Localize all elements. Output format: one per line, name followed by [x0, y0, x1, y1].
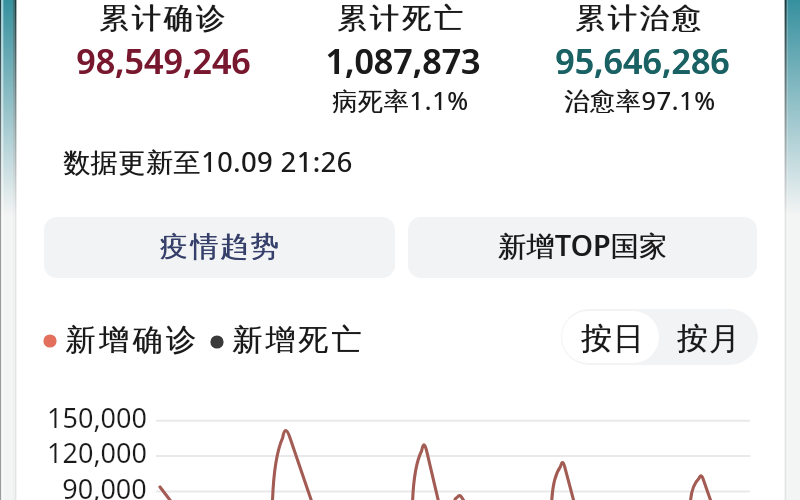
- staticText: 98,549,246: [76, 38, 251, 84]
- staticText: 累计治愈: [574, 0, 704, 37]
- button[interactable]: 新增死亡: [206, 321, 362, 357]
- staticText: 疫情趋势: [160, 229, 281, 264]
- staticText: 98,549,246: [76, 38, 251, 84]
- button[interactable]: 疫情趋势: [44, 217, 395, 278]
- staticText: 新增TOP国家: [498, 226, 668, 264]
- staticText: 按月: [677, 319, 741, 358]
- staticText: 95,646,286: [555, 38, 730, 84]
- staticText: 新增确诊: [65, 321, 200, 359]
- staticText: 累计治愈: [575, 0, 705, 37]
- staticText: 95,646,286: [555, 38, 730, 84]
- staticText: 累计死亡: [336, 0, 466, 37]
- staticText: 新增死亡: [232, 321, 365, 359]
- staticText: 治愈率97.1%: [564, 83, 716, 117]
- button[interactable]: [562, 311, 659, 363]
- staticText: 按日: [581, 319, 645, 358]
- staticText: 病死率1.1%: [332, 83, 469, 117]
- staticText: 治愈率97.1%: [564, 83, 716, 117]
- staticText: 病死率1.1%: [332, 83, 469, 117]
- staticText: 新增确诊: [65, 321, 200, 359]
- staticText: 按月: [677, 319, 741, 358]
- staticText: 120,000: [47, 434, 147, 471]
- staticText: 累计确诊: [99, 0, 229, 37]
- staticText: 累计死亡: [337, 0, 467, 37]
- staticText: 150,000: [47, 399, 147, 436]
- staticText: 1,087,873: [325, 38, 481, 84]
- button[interactable]: 新增确诊: [41, 321, 197, 357]
- staticText: 1,087,873: [325, 38, 481, 84]
- staticText: 按日: [581, 319, 645, 358]
- staticText: 新增TOP国家: [498, 226, 668, 264]
- staticText: 数据更新至10.09 21:26: [63, 143, 353, 180]
- button[interactable]: [660, 309, 758, 365]
- button[interactable]: [561, 309, 660, 365]
- staticText: 累计确诊: [99, 0, 229, 37]
- staticText: 新增死亡: [232, 321, 365, 359]
- button[interactable]: 新增TOP国家: [408, 217, 757, 278]
- staticText: 数据更新至10.09 21:26: [63, 143, 353, 180]
- staticText: 疫情趋势: [160, 229, 281, 264]
- staticText: 90,000: [62, 470, 147, 500]
